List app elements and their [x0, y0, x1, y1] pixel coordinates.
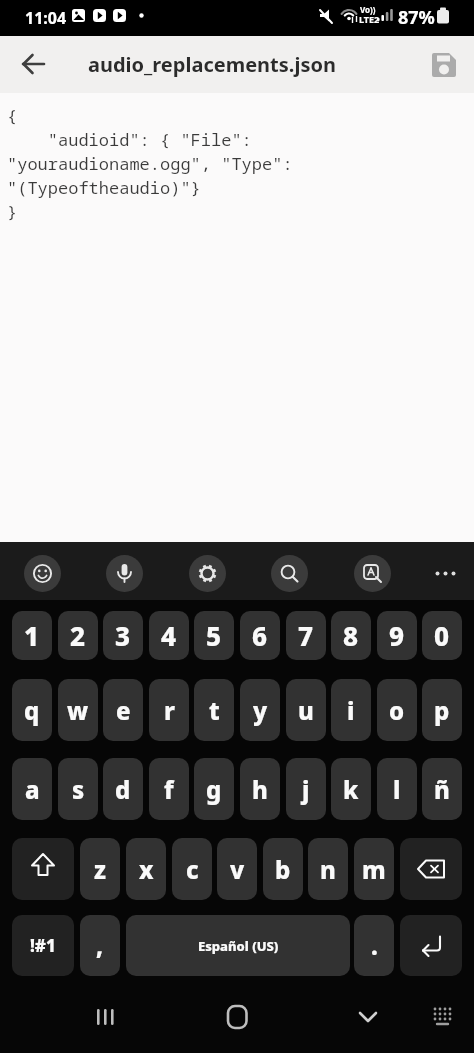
staticText: g [206, 773, 222, 806]
staticText: 8 [343, 618, 359, 653]
staticText: s [72, 773, 85, 806]
button[interactable]: 0 [422, 611, 462, 660]
staticText: b [275, 853, 291, 886]
staticText: ñ [434, 773, 450, 806]
staticText: l [393, 773, 401, 806]
staticText: 5 [206, 618, 222, 653]
button[interactable]: ñ [422, 758, 462, 820]
button[interactable]: c [172, 838, 212, 900]
button[interactable]: o [377, 679, 417, 741]
staticText: e [116, 694, 131, 727]
staticText: , [96, 929, 104, 962]
staticText: m [362, 853, 386, 886]
button[interactable]: 1 [12, 611, 52, 660]
button[interactable]: Español (US) [126, 915, 350, 976]
staticText: v [230, 853, 245, 886]
button[interactable]: u [286, 679, 326, 741]
button[interactable] [400, 915, 462, 976]
button[interactable]: x [126, 838, 166, 900]
button[interactable]: b [263, 838, 303, 900]
button[interactable] [189, 555, 226, 592]
staticText: i [347, 694, 355, 727]
staticText: Vo)) [360, 4, 376, 15]
button[interactable]: v [217, 838, 257, 900]
staticText: o [389, 694, 405, 727]
staticText: x [139, 853, 154, 886]
staticText: 1 [24, 618, 40, 653]
button[interactable]: l [377, 758, 417, 820]
button[interactable]: h [240, 758, 280, 820]
button[interactable]: g [194, 758, 234, 820]
staticText: f [164, 773, 174, 806]
button[interactable]: . [354, 915, 394, 976]
staticText: w [67, 694, 89, 727]
button[interactable]: z [80, 838, 120, 900]
button[interactable]: 3 [103, 611, 143, 660]
staticText: p [434, 694, 450, 727]
staticText: t [209, 694, 220, 727]
staticText: r [164, 694, 175, 727]
staticText: c [186, 853, 199, 886]
button[interactable]: 8 [331, 611, 371, 660]
button[interactable]: y [240, 679, 280, 741]
staticText: k [343, 773, 359, 806]
staticText: 4 [161, 618, 177, 653]
staticText: 7 [298, 618, 314, 653]
button[interactable] [271, 555, 308, 592]
button[interactable]: 7 [286, 611, 326, 660]
button[interactable]: t [194, 679, 234, 741]
staticText: z [94, 853, 106, 886]
button[interactable]: k [331, 758, 371, 820]
staticText: 6 [252, 618, 268, 653]
staticText: 2 [70, 618, 86, 653]
button[interactable]: 6 [240, 611, 280, 660]
button[interactable] [428, 556, 463, 591]
button[interactable]: , [80, 915, 120, 976]
staticText: 11:04 [25, 7, 67, 29]
staticText: LTE2 [359, 13, 380, 25]
button[interactable]: 4 [149, 611, 189, 660]
staticText: 87% [398, 5, 435, 30]
button[interactable]: e [103, 679, 143, 741]
staticText: audio_replacements.json [88, 51, 336, 78]
staticText: j [302, 773, 310, 806]
button[interactable]: m [354, 838, 394, 900]
staticText: !#1 [30, 934, 56, 957]
button[interactable] [12, 838, 74, 900]
button[interactable]: r [149, 679, 189, 741]
staticText: 9 [389, 618, 405, 653]
button[interactable]: j [286, 758, 326, 820]
staticText: n [320, 853, 336, 886]
staticText: Español (US) [198, 937, 279, 955]
staticText: u [298, 694, 314, 727]
button[interactable]: s [58, 758, 98, 820]
staticText: d [115, 773, 131, 806]
button[interactable]: w [58, 679, 98, 741]
staticText: 0 [434, 618, 450, 653]
button[interactable]: d [103, 758, 143, 820]
button[interactable]: f [149, 758, 189, 820]
button[interactable]: i [331, 679, 371, 741]
button[interactable]: q [12, 679, 52, 741]
button[interactable]: 5 [194, 611, 234, 660]
button[interactable]: 2 [58, 611, 98, 660]
button[interactable] [400, 838, 462, 900]
staticText: 3 [115, 618, 131, 653]
staticText: . [371, 929, 378, 962]
staticText: a [25, 773, 40, 806]
button[interactable]: n [308, 838, 348, 900]
button[interactable] [10, 40, 58, 88]
button[interactable] [24, 555, 61, 592]
staticText: { "audioid": { "File": "youraudioname.og… [7, 104, 293, 223]
button[interactable]: p [422, 679, 462, 741]
button[interactable] [106, 555, 143, 592]
staticText: q [24, 694, 40, 727]
button[interactable]: 9 [377, 611, 417, 660]
staticText: y [253, 694, 268, 727]
button[interactable]: !#1 [12, 915, 74, 976]
button[interactable] [424, 45, 464, 85]
button[interactable]: a [12, 758, 52, 820]
staticText: h [252, 773, 268, 806]
button[interactable] [354, 555, 391, 592]
